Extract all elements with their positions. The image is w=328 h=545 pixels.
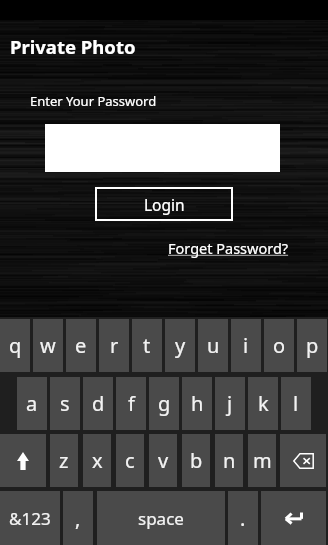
staticText: space	[138, 507, 184, 530]
button[interactable]: n	[215, 434, 243, 487]
staticText: l	[293, 390, 299, 417]
button[interactable]: p	[297, 319, 327, 372]
button[interactable]: c	[116, 434, 144, 487]
button[interactable]: o	[264, 319, 294, 372]
button[interactable]: Login	[95, 187, 233, 221]
button[interactable]: d	[83, 377, 113, 430]
staticText: v	[158, 447, 169, 474]
staticText: Forget Password?	[168, 238, 289, 258]
button[interactable]: y	[165, 319, 195, 372]
staticText: b	[190, 447, 203, 474]
staticText: Enter Your Password	[30, 92, 157, 110]
staticText: q	[9, 332, 22, 359]
button[interactable]: Enter	[261, 491, 326, 545]
staticText: a	[26, 390, 38, 417]
button[interactable]: m	[248, 434, 276, 487]
button[interactable]: r	[99, 319, 129, 372]
staticText: z	[59, 447, 69, 474]
button[interactable]: u	[198, 319, 228, 372]
button[interactable]: f	[116, 377, 146, 430]
button[interactable]: k	[248, 377, 278, 430]
button[interactable]: Backspace	[280, 434, 326, 487]
button[interactable]: space	[97, 491, 225, 545]
staticText: n	[223, 447, 236, 474]
staticText: i	[243, 332, 249, 359]
button[interactable]: Shift	[0, 434, 46, 487]
staticText: k	[258, 390, 269, 417]
staticText: f	[128, 390, 135, 417]
staticText: &123	[9, 507, 51, 530]
staticText: d	[92, 390, 105, 417]
staticText: u	[207, 332, 220, 359]
staticText: j	[227, 390, 233, 417]
button[interactable]: g	[149, 377, 179, 430]
staticText: .	[240, 505, 246, 532]
button[interactable]: b	[182, 434, 210, 487]
staticText: w	[40, 332, 56, 359]
button[interactable]: ,	[63, 491, 93, 545]
staticText: y	[175, 332, 186, 359]
button[interactable]: .	[228, 491, 258, 545]
button[interactable]: h	[182, 377, 212, 430]
staticText: s	[60, 390, 70, 417]
staticText: x	[92, 447, 103, 474]
staticText: Login	[144, 194, 185, 215]
button[interactable]: x	[83, 434, 111, 487]
button[interactable]: Forget Password?	[168, 238, 289, 258]
button[interactable]: z	[50, 434, 78, 487]
button[interactable]: l	[281, 377, 311, 430]
staticText: h	[191, 390, 204, 417]
button[interactable]: v	[149, 434, 177, 487]
staticText: t	[143, 332, 151, 359]
staticText: g	[158, 390, 171, 417]
button[interactable]: &123	[0, 491, 60, 545]
staticText: p	[306, 332, 319, 359]
staticText: e	[75, 332, 87, 359]
staticText: Private Photo	[10, 34, 136, 59]
button[interactable]: t	[132, 319, 162, 372]
staticText: ,	[75, 505, 81, 532]
staticText: m	[253, 447, 272, 474]
button[interactable]: e	[66, 319, 96, 372]
button[interactable]: j	[215, 377, 245, 430]
button[interactable]: a	[17, 377, 47, 430]
staticText: c	[125, 447, 135, 474]
staticText: o	[273, 332, 286, 359]
button[interactable]: q	[0, 319, 30, 372]
button[interactable]: w	[33, 319, 63, 372]
button[interactable]: s	[50, 377, 80, 430]
button[interactable]: i	[231, 319, 261, 372]
staticText: r	[110, 332, 119, 359]
